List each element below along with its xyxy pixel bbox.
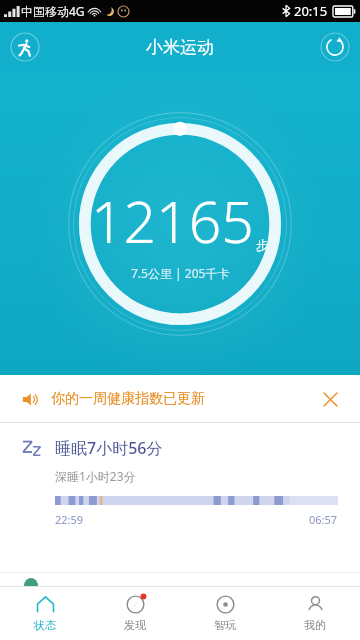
- staticText: 状态: [34, 618, 56, 632]
- staticText: 中国移动4G: [21, 3, 85, 19]
- button[interactable]: Start workout: [10, 32, 40, 62]
- staticText: 深睡1小时23分: [55, 468, 136, 484]
- button[interactable]: Sync: [320, 32, 350, 62]
- staticText: 发现: [124, 618, 146, 632]
- button[interactable]: 发现: [90, 587, 180, 640]
- staticText: 智玩: [214, 618, 236, 632]
- staticText: 步: [256, 237, 269, 253]
- staticText: 20:15: [294, 2, 328, 20]
- button[interactable]: 智玩: [180, 587, 270, 640]
- staticText: 06:57: [309, 512, 338, 527]
- staticText: 小米运动: [146, 37, 214, 58]
- staticText: 12165: [91, 182, 254, 260]
- button[interactable]: 我的: [270, 587, 360, 640]
- staticText: 7.5公里 | 205千卡: [131, 265, 230, 281]
- button[interactable]: Dismiss: [318, 387, 342, 411]
- button[interactable]: 状态: [0, 587, 90, 640]
- button[interactable]: [0, 572, 360, 586]
- button[interactable]: 睡眠7小时56分: [0, 423, 360, 537]
- staticText: 我的: [304, 618, 326, 632]
- staticText: 你的一周健康指数已更新: [51, 390, 205, 408]
- button[interactable]: Steps 12165: [68, 112, 292, 336]
- button[interactable]: 你的一周健康指数已更新: [0, 375, 360, 423]
- staticText: 睡眠7小时56分: [55, 437, 163, 459]
- staticText: 22:59: [55, 512, 84, 527]
